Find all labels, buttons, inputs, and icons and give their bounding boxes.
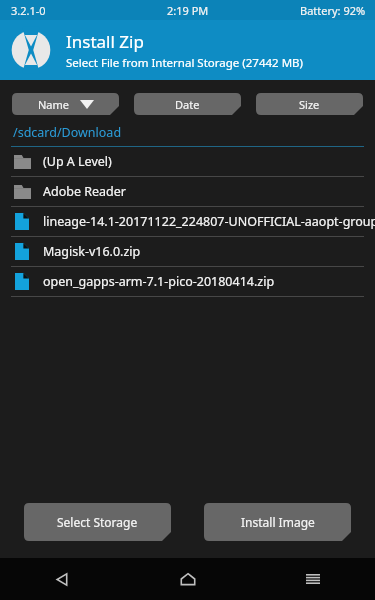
button[interactable]: Home [125, 558, 250, 600]
staticText: Magisk-v16.0.zip [43, 243, 141, 260]
button[interactable]: open_gapps-arm-7.1-pico-20180414.zip [0, 267, 375, 296]
staticText: lineage-14.1-20171122_224807-UNOFFICIAL-… [43, 213, 375, 230]
button[interactable]: Back [0, 558, 125, 600]
button[interactable]: lineage-14.1-20171122_224807-UNOFFICIAL-… [0, 207, 375, 236]
button[interactable]: (Up A Level) [0, 147, 375, 176]
staticText: Install Image [241, 514, 315, 530]
staticText: Install Zip [66, 30, 144, 53]
staticText: /sdcard/Download [13, 124, 122, 141]
button[interactable]: Date [134, 93, 241, 115]
button[interactable]: Magisk-v16.0.zip [0, 237, 375, 266]
button[interactable]: Recent apps [250, 558, 375, 600]
staticText: 2:19 PM [167, 3, 209, 18]
button[interactable]: Install Image [204, 503, 351, 541]
button[interactable]: Adobe Reader [0, 177, 375, 206]
staticText: (Up A Level) [43, 153, 112, 170]
staticText: Size [299, 97, 320, 112]
staticText: Date [175, 97, 200, 112]
staticText: Battery: 92% [300, 3, 366, 18]
staticText: open_gapps-arm-7.1-pico-20180414.zip [43, 273, 275, 290]
button[interactable]: Size [256, 93, 363, 115]
staticText: Adobe Reader [43, 183, 126, 200]
button[interactable]: Select Storage [24, 503, 171, 541]
staticText: Select File from Internal Storage (27442… [66, 55, 304, 71]
staticText: Name [38, 97, 70, 112]
button[interactable]: Name [12, 93, 119, 115]
staticText: 3.2.1-0 [11, 3, 46, 18]
staticText: Select Storage [57, 514, 138, 530]
